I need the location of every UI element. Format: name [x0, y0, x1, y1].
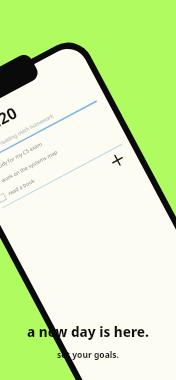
button[interactable]: A new day is here. Set your goals. — [0, 0, 176, 380]
